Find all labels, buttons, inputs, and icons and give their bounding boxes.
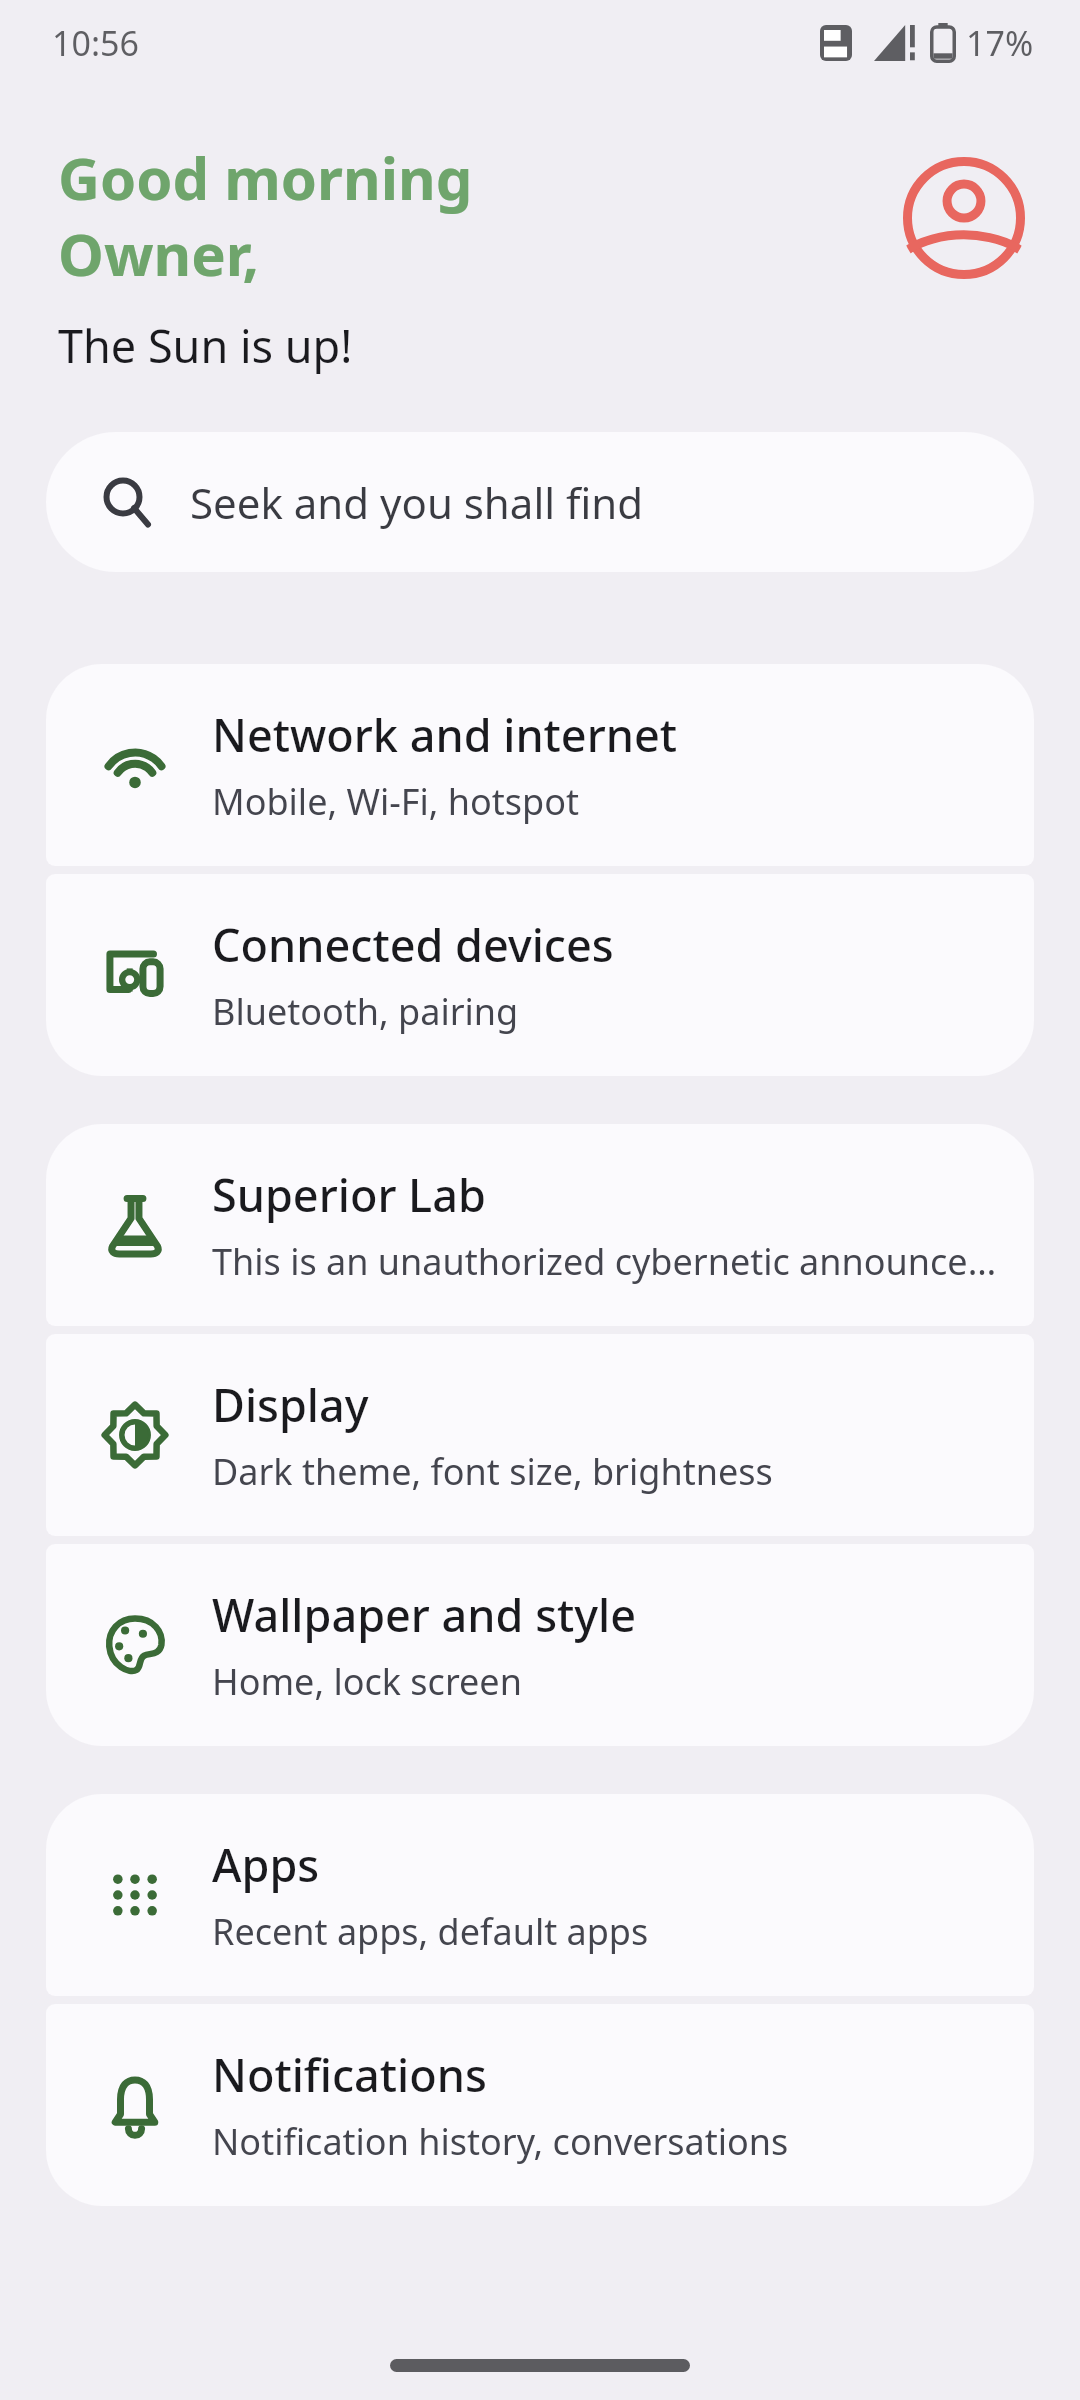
- button[interactable]: Wallpaper and style: [46, 1544, 1034, 1746]
- staticText: The Sun is up!: [58, 315, 353, 376]
- staticText: Mobile, Wi-Fi, hotspot: [212, 777, 579, 826]
- staticText: Dark theme, font size, brightness: [212, 1447, 773, 1496]
- button[interactable]: Connected devices: [46, 874, 1034, 1076]
- staticText: Apps: [212, 1834, 320, 1895]
- staticText: Notification history, conversations: [212, 2117, 789, 2166]
- button[interactable]: Network and internet: [46, 664, 1034, 866]
- button[interactable]: Account: [900, 154, 1028, 282]
- staticText: 17%: [966, 20, 1034, 66]
- staticText: Connected devices: [212, 914, 614, 975]
- staticText: Superior Lab: [212, 1164, 486, 1225]
- staticText: Seek and you shall find: [190, 474, 644, 531]
- staticText: Wallpaper and style: [212, 1584, 636, 1645]
- button[interactable]: Notifications: [46, 2004, 1034, 2206]
- staticText: This is an unauthorized cybernetic annou…: [212, 1237, 997, 1286]
- staticText: Good morning Owner,: [58, 138, 473, 293]
- button[interactable]: Display: [46, 1334, 1034, 1536]
- button[interactable]: Superior Lab: [46, 1124, 1034, 1326]
- staticText: Home, lock screen: [212, 1657, 522, 1706]
- staticText: Display: [212, 1374, 369, 1435]
- staticText: Notifications: [212, 2044, 487, 2105]
- staticText: Bluetooth, pairing: [212, 987, 519, 1036]
- button[interactable]: Seek and you shall find: [46, 432, 1034, 572]
- staticText: Network and internet: [212, 704, 677, 765]
- staticText: Recent apps, default apps: [212, 1907, 649, 1956]
- button[interactable]: Apps: [46, 1794, 1034, 1996]
- staticText: 10:56: [52, 20, 139, 66]
